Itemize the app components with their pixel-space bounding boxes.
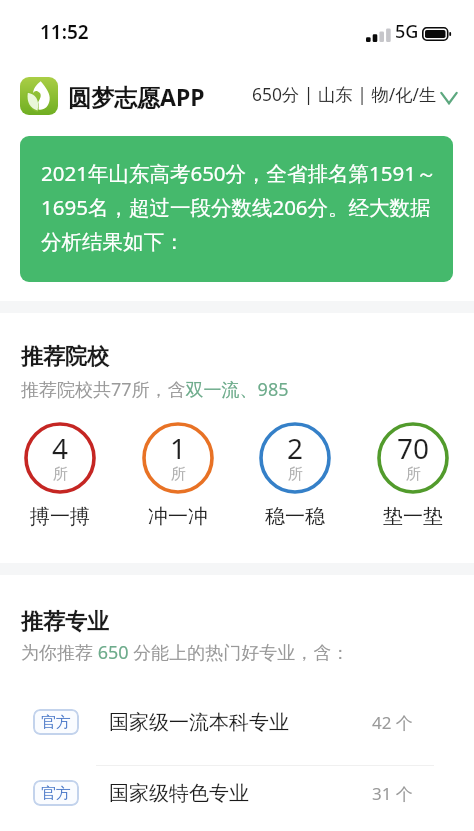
staticText: 所 — [171, 465, 186, 484]
staticText: 官方 — [41, 784, 71, 803]
staticText: 国家级一流本科专业 — [109, 710, 289, 735]
button[interactable]: 2021年山东高考650分，全省排名第1591～1695名，超过一段分数线206… — [20, 136, 453, 282]
button[interactable]: 官方 — [0, 765, 474, 821]
staticText: 4 — [52, 429, 69, 467]
staticText: 冲一冲 — [148, 504, 208, 529]
staticText: 650分 | 山东 | 物/化/生 — [252, 82, 437, 106]
staticText: 国家级特色专业 — [109, 781, 249, 806]
staticText: 42 个 — [372, 711, 413, 734]
staticText: 11:52 — [40, 19, 89, 45]
staticText: 稳一稳 — [265, 504, 325, 529]
button[interactable]: 70 — [377, 422, 449, 529]
other: Change filter — [440, 89, 458, 104]
staticText: 推荐院校共77所，含双一流、985 — [21, 377, 289, 402]
staticText: 2 — [287, 429, 304, 467]
staticText: 5G — [395, 19, 419, 44]
staticText: 圆梦志愿APP — [68, 81, 205, 112]
button[interactable]: 650分 | 山东 | 物/化/生 — [252, 82, 458, 106]
staticText: 推荐院校 — [21, 343, 109, 371]
other: App logo — [20, 77, 58, 115]
staticText: 推荐专业 — [21, 608, 109, 636]
staticText: 所 — [288, 465, 303, 484]
staticText: 31 个 — [372, 782, 413, 805]
button[interactable]: 1 — [142, 422, 214, 529]
staticText: 官方 — [41, 713, 71, 732]
staticText: 所 — [406, 465, 421, 484]
button[interactable]: 4 — [24, 422, 96, 529]
staticText: 2021年山东高考650分，全省排名第1591～1695名，超过一段分数线206… — [41, 159, 441, 255]
staticText: 70 — [397, 429, 430, 467]
staticText: 垫一垫 — [383, 504, 443, 529]
button[interactable]: 官方 — [0, 694, 474, 750]
staticText: 搏一搏 — [30, 504, 90, 529]
button[interactable]: 2 — [259, 422, 331, 529]
staticText: 为你推荐 650 分能上的热门好专业，含： — [21, 640, 350, 665]
staticText: 所 — [53, 465, 68, 484]
staticText: 1 — [170, 429, 187, 467]
button[interactable]: App logo — [20, 77, 205, 115]
